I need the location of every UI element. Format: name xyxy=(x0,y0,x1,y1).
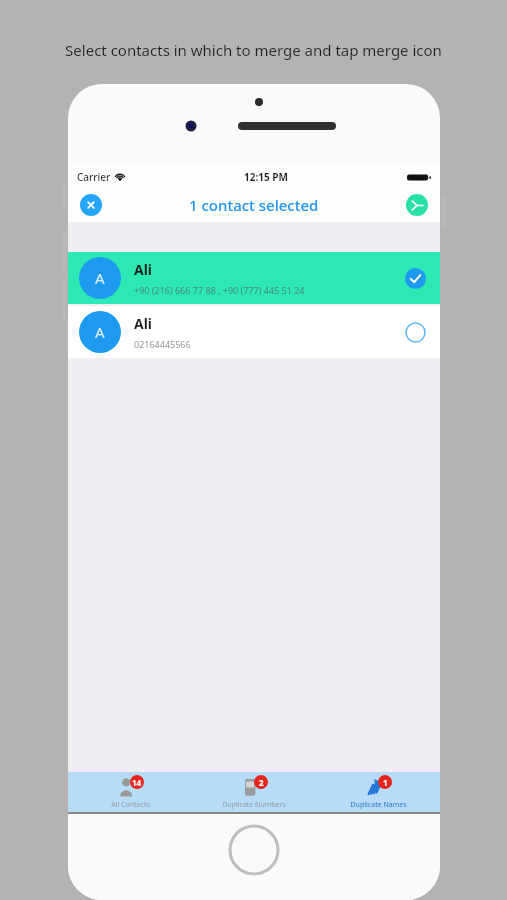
staticText: 2 xyxy=(259,777,264,788)
staticText: Duplicate Names xyxy=(350,800,407,810)
staticText: Select contacts in which to merge and ta… xyxy=(0,40,507,60)
staticText: +90 (216) 666 77 88 , +90 (777) 445 51 2… xyxy=(134,284,305,296)
button[interactable]: 14 xyxy=(68,772,192,812)
staticText: Duplicate Numbers xyxy=(222,800,286,810)
button[interactable]: Close xyxy=(80,194,102,216)
staticText: 12:15 PM xyxy=(244,170,288,184)
button[interactable]: Selected xyxy=(405,268,426,289)
staticText: 02164445566 xyxy=(134,338,191,350)
button[interactable]: Not selected xyxy=(405,322,426,343)
staticText: 1 contact selected xyxy=(189,195,319,215)
staticText: 14 xyxy=(132,777,142,788)
staticText: Ali xyxy=(134,314,153,333)
button[interactable]: Home xyxy=(228,824,280,876)
staticText: 1 xyxy=(383,777,388,788)
button[interactable]: 2 xyxy=(192,772,316,812)
staticText: A xyxy=(95,268,105,288)
staticText: Carrier xyxy=(77,170,111,184)
button[interactable]: Merge contacts xyxy=(406,194,428,216)
button[interactable]: A xyxy=(68,306,440,358)
button[interactable]: 1 xyxy=(316,772,440,812)
staticText: All Contacts xyxy=(111,800,150,810)
staticText: Ali xyxy=(134,260,153,279)
staticText: A xyxy=(95,322,105,342)
button[interactable]: A xyxy=(68,252,440,304)
